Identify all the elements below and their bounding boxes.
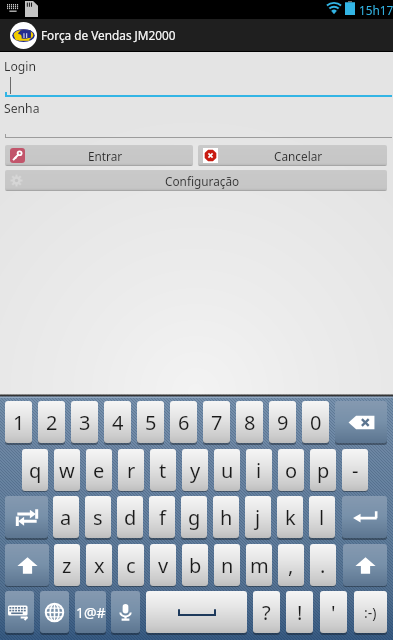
- button[interactable]: h: [213, 496, 239, 538]
- button[interactable]: ?: [253, 591, 280, 633]
- staticText: ?: [262, 599, 271, 626]
- button[interactable]: 6: [170, 401, 197, 443]
- button[interactable]: a: [53, 496, 79, 538]
- button[interactable]: Space: [146, 591, 247, 633]
- button[interactable]: m: [246, 544, 272, 586]
- button[interactable]: s: [85, 496, 111, 538]
- button[interactable]: 1: [5, 401, 32, 443]
- staticText: .: [320, 552, 326, 579]
- button[interactable]: Keyboard: [5, 591, 34, 633]
- button[interactable]: 8: [236, 401, 263, 443]
- button[interactable]: Entrar: [5, 145, 193, 166]
- button[interactable]: l: [309, 496, 335, 538]
- button[interactable]: 5: [137, 401, 164, 443]
- button[interactable]: o: [278, 449, 304, 491]
- staticText: Cancelar: [274, 148, 323, 164]
- staticText: n: [221, 552, 234, 579]
- button[interactable]: k: [277, 496, 303, 538]
- button[interactable]: Cancelar: [198, 145, 387, 166]
- button[interactable]: ': [320, 591, 347, 633]
- other: Keyboard: [8, 604, 31, 620]
- button[interactable]: ,: [278, 544, 304, 586]
- staticText: 15h17: [359, 2, 393, 18]
- button[interactable]: 1@#: [75, 591, 106, 633]
- button[interactable]: Shift: [5, 544, 49, 586]
- staticText: Entrar: [88, 148, 123, 164]
- staticText: u: [221, 457, 234, 484]
- staticText: t: [159, 457, 167, 484]
- button[interactable]: Shift: [343, 544, 387, 586]
- button[interactable]: g: [181, 496, 207, 538]
- staticText: w: [59, 457, 75, 484]
- staticText: l: [319, 504, 325, 531]
- staticText: 2: [46, 409, 58, 436]
- button[interactable]: v: [150, 544, 176, 586]
- staticText: m: [250, 552, 269, 579]
- button[interactable]: f: [149, 496, 175, 538]
- button[interactable]: Voice input: [111, 591, 140, 633]
- staticText: d: [124, 504, 137, 531]
- button[interactable]: z: [54, 544, 80, 586]
- button[interactable]: 2: [38, 401, 65, 443]
- other: Shift: [355, 556, 376, 575]
- staticText: Força de Vendas JM2000: [41, 27, 176, 43]
- staticText: Senha: [4, 100, 40, 117]
- button[interactable]: n: [214, 544, 240, 586]
- button[interactable]: Tab: [5, 496, 48, 538]
- staticText: s: [93, 504, 103, 531]
- button[interactable]: 9: [269, 401, 296, 443]
- staticText: Login: [4, 58, 36, 75]
- other: Voice input: [119, 603, 132, 621]
- staticText: a: [60, 504, 72, 531]
- staticText: e: [93, 457, 105, 484]
- button[interactable]: .: [310, 544, 336, 586]
- button[interactable]: q: [22, 449, 48, 491]
- button[interactable]: :-): [354, 591, 387, 633]
- button[interactable]: Backspace: [335, 401, 387, 443]
- staticText: -: [352, 457, 359, 484]
- other: Change language: [45, 603, 64, 622]
- staticText: z: [62, 552, 72, 579]
- button[interactable]: y: [182, 449, 208, 491]
- button[interactable]: u: [214, 449, 240, 491]
- staticText: 8: [244, 409, 256, 436]
- button[interactable]: c: [118, 544, 144, 586]
- button[interactable]: b: [182, 544, 208, 586]
- button[interactable]: Enter: [342, 496, 387, 538]
- staticText: 7: [211, 409, 223, 436]
- button[interactable]: i: [246, 449, 272, 491]
- staticText: v: [158, 552, 169, 579]
- button[interactable]: t: [150, 449, 176, 491]
- other: Shift: [17, 556, 38, 575]
- button[interactable]: Change language: [40, 591, 69, 633]
- button[interactable]: -: [342, 449, 368, 491]
- staticText: h: [220, 504, 233, 531]
- staticText: 1@#: [76, 603, 106, 622]
- staticText: x: [94, 552, 105, 579]
- button[interactable]: w: [54, 449, 80, 491]
- button[interactable]: !: [286, 591, 313, 633]
- staticText: i: [256, 457, 262, 484]
- staticText: g: [188, 504, 201, 531]
- staticText: y: [190, 457, 201, 484]
- staticText: b: [189, 552, 202, 579]
- button[interactable]: r: [118, 449, 144, 491]
- staticText: 5: [145, 409, 157, 436]
- other: Tab: [16, 509, 38, 526]
- staticText: Configuração: [165, 173, 240, 189]
- button[interactable]: x: [86, 544, 112, 586]
- staticText: p: [317, 457, 330, 484]
- staticText: 0: [310, 409, 322, 436]
- staticText: q: [29, 457, 42, 484]
- button[interactable]: 0: [302, 401, 329, 443]
- button[interactable]: e: [86, 449, 112, 491]
- button[interactable]: 7: [203, 401, 230, 443]
- button[interactable]: j: [245, 496, 271, 538]
- button[interactable]: 4: [104, 401, 131, 443]
- staticText: c: [126, 552, 136, 579]
- button[interactable]: 3: [71, 401, 98, 443]
- button[interactable]: d: [117, 496, 143, 538]
- button[interactable]: p: [310, 449, 336, 491]
- staticText: 3: [79, 409, 91, 436]
- button[interactable]: Configuração: [5, 170, 387, 191]
